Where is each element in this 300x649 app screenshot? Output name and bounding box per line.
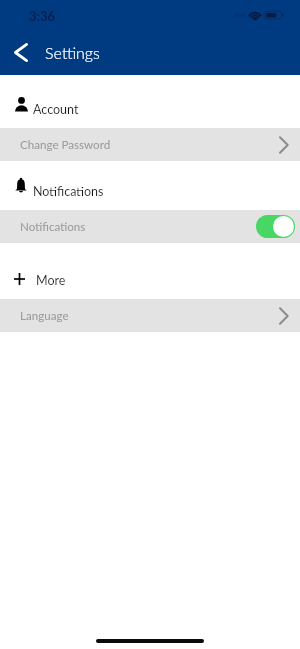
staticText: 3:36 <box>29 8 55 24</box>
staticText: Notifications <box>33 184 104 199</box>
button[interactable]: Change Password <box>0 128 300 161</box>
staticText: Language <box>20 309 69 323</box>
staticText: More <box>36 273 66 288</box>
staticText: Change Password <box>20 138 111 152</box>
staticText: Notifications <box>20 220 86 234</box>
staticText: Settings <box>45 43 100 62</box>
button[interactable]: Toggle notifications <box>256 215 295 238</box>
button[interactable]: Back <box>6 37 36 67</box>
button[interactable]: Language <box>0 299 300 332</box>
staticText: Account <box>33 102 79 117</box>
